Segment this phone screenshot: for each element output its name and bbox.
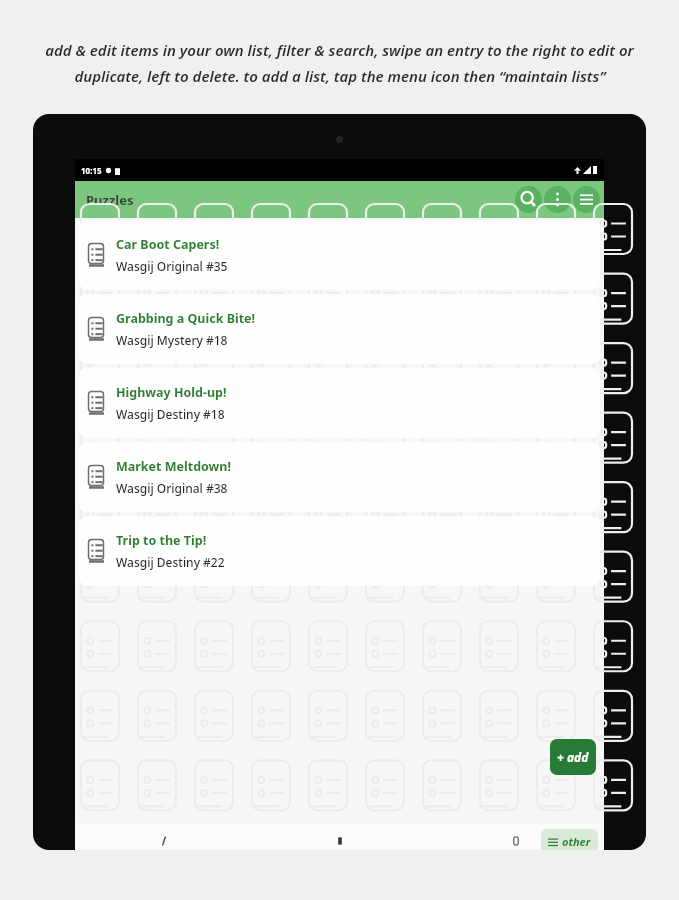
button[interactable]: Menu (573, 186, 600, 213)
staticText: Wasgij Destiny #18 (116, 406, 225, 422)
staticText: + add (557, 749, 589, 765)
button[interactable]: Trip to the Tip! (79, 516, 600, 586)
button[interactable]: Highway Hold-up! (79, 368, 600, 438)
button[interactable]: + add (550, 739, 596, 775)
button[interactable]: Grabbing a Quick Bite! (79, 294, 600, 364)
staticText: Trip to the Tip! (116, 532, 207, 549)
staticText: Wasgij Mystery #18 (116, 332, 228, 348)
staticText: add & edit items in your own list, filte… (45, 40, 634, 60)
staticText: Highway Hold-up! (116, 384, 227, 401)
button[interactable]: Recents (428, 823, 604, 850)
staticText: duplicate, left to delete. to add a list… (74, 66, 606, 86)
staticText: Wasgij Original #35 (116, 258, 228, 274)
staticText: Wasgij Original #38 (116, 480, 228, 496)
button[interactable]: More options (544, 186, 571, 213)
staticText: 10:15 (81, 165, 102, 176)
button[interactable]: other (541, 829, 598, 850)
button[interactable]: Home (252, 823, 428, 850)
button[interactable]: Search (515, 186, 542, 213)
staticText: Car Boot Capers! (116, 236, 220, 253)
staticText: Market Meltdown! (116, 458, 231, 475)
staticText: Wasgij Destiny #22 (116, 554, 225, 570)
button[interactable]: Back (75, 823, 252, 850)
button[interactable]: Market Meltdown! (79, 442, 600, 512)
staticText: Grabbing a Quick Bite! (116, 310, 256, 327)
button[interactable]: Car Boot Capers! (79, 220, 600, 290)
staticText: Puzzles (86, 191, 134, 209)
staticText: other (562, 834, 591, 849)
